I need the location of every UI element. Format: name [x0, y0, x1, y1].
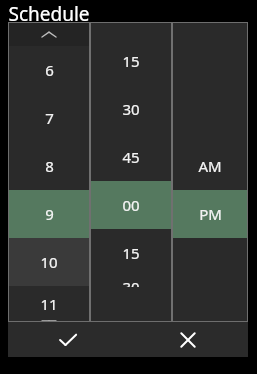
staticText: PM	[199, 204, 222, 224]
staticText: 7	[45, 108, 54, 128]
button[interactable]: 7	[9, 94, 89, 142]
button[interactable]: 00	[91, 181, 171, 229]
button[interactable]: PM	[173, 190, 247, 238]
staticText: 45	[122, 147, 140, 167]
button[interactable]: Accept	[8, 322, 128, 357]
button[interactable]: 9	[9, 190, 89, 238]
staticText: 6	[45, 60, 54, 80]
button[interactable]: 30	[91, 277, 171, 287]
staticText: 8	[45, 156, 54, 176]
button[interactable]: 15	[91, 229, 171, 277]
staticText: 11	[40, 294, 58, 314]
staticText: 15	[122, 51, 140, 71]
button[interactable]: 6	[9, 46, 89, 94]
button[interactable]: 11	[9, 286, 89, 321]
staticText: 10	[40, 252, 58, 272]
staticText: 00	[122, 195, 140, 215]
staticText: Schedule	[8, 1, 90, 27]
button[interactable]: 15	[91, 37, 171, 85]
staticText: AM	[198, 156, 222, 176]
staticText: 30	[122, 99, 140, 119]
staticText: 30	[122, 277, 140, 287]
staticText: 9	[45, 204, 54, 224]
button[interactable]: 30	[91, 85, 171, 133]
staticText: 15	[122, 243, 140, 263]
button[interactable]: 8	[9, 142, 89, 190]
button[interactable]: 45	[91, 133, 171, 181]
button[interactable]: 10	[9, 238, 89, 286]
button[interactable]: Previous hour	[9, 23, 89, 46]
button[interactable]: Cancel	[128, 322, 248, 357]
button[interactable]: AM	[173, 142, 247, 190]
